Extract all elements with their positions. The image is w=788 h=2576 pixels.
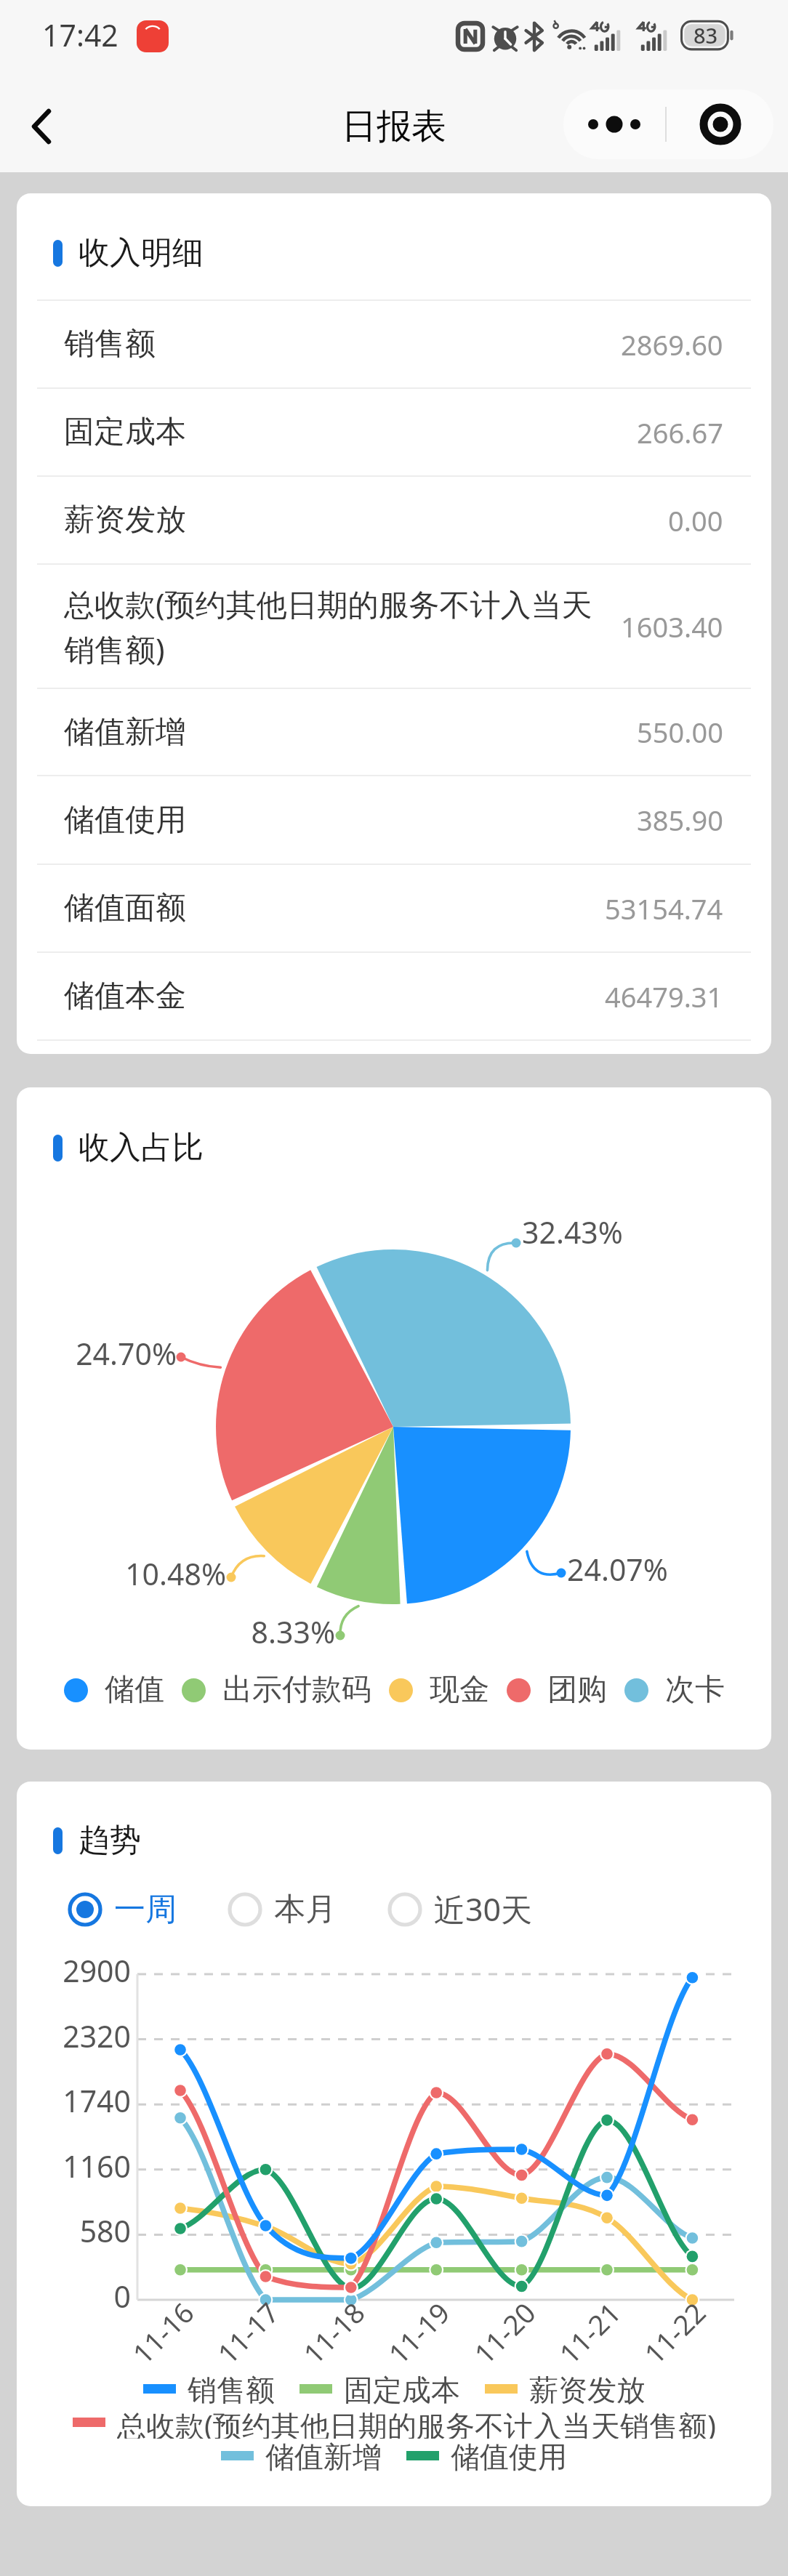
- staticText: 11-17: [209, 2293, 287, 2372]
- staticText: 储值新增: [265, 2439, 382, 2472]
- staticText: 11-19: [380, 2293, 458, 2372]
- button[interactable]: 总收款(预约其他日期的服务不计入当天销售额): [17, 565, 771, 688]
- button[interactable]: 一周: [66, 1890, 177, 1929]
- staticText: 580: [17, 2210, 131, 2251]
- staticText: 17:42: [42, 15, 118, 55]
- staticText: 10.48%: [17, 1553, 226, 1594]
- staticText: 24.07%: [567, 1549, 771, 1590]
- staticText: 收入占比: [79, 1128, 204, 1167]
- staticText: 收入明细: [79, 233, 204, 273]
- button[interactable]: Close mini program: [667, 89, 773, 159]
- button[interactable]: 固定成本: [17, 389, 771, 475]
- staticText: 销售额: [188, 2372, 275, 2405]
- button[interactable]: 固定成本: [299, 2372, 460, 2405]
- button[interactable]: 储值使用: [406, 2439, 567, 2472]
- button[interactable]: 近30天: [386, 1888, 533, 1931]
- staticText: 2900: [17, 1950, 131, 1991]
- staticText: 近30天: [434, 1888, 533, 1931]
- staticText: 固定成本: [344, 2372, 460, 2405]
- staticText: 趋势: [79, 1821, 141, 1860]
- staticText: 储值本金: [64, 977, 186, 1015]
- staticText: 11-16: [124, 2293, 202, 2372]
- button[interactable]: 总收款(预约其他日期的服务不计入当天销售额): [73, 2405, 716, 2439]
- staticText: 2869.60: [621, 326, 723, 363]
- staticText: 53154.74: [605, 890, 723, 927]
- staticText: 24.70%: [17, 1333, 177, 1374]
- staticText: 本月: [274, 1890, 337, 1929]
- button[interactable]: Back: [9, 94, 74, 159]
- staticText: 11-20: [465, 2293, 544, 2372]
- staticText: 83: [693, 21, 718, 49]
- staticText: 550.00: [637, 713, 723, 751]
- staticText: 次卡: [665, 1671, 725, 1709]
- button[interactable]: 储值新增: [221, 2439, 382, 2472]
- staticText: 一周: [114, 1890, 177, 1929]
- button[interactable]: 薪资发放: [485, 2372, 646, 2405]
- button[interactable]: 本月: [226, 1890, 337, 1929]
- button[interactable]: 储值新增: [17, 689, 771, 775]
- staticText: 总收款(预约其他日期的服务不计入当天销售额): [117, 2405, 716, 2439]
- staticText: 1740: [17, 2080, 131, 2121]
- staticText: 储值新增: [64, 713, 186, 752]
- staticText: 出示付款码: [222, 1671, 371, 1709]
- staticText: 储值使用: [451, 2439, 567, 2472]
- button[interactable]: 储值使用: [17, 776, 771, 864]
- staticText: 11-22: [636, 2293, 714, 2372]
- staticText: 薪资发放: [64, 501, 186, 539]
- button[interactable]: 销售额: [17, 301, 771, 387]
- button[interactable]: 储值面额: [17, 865, 771, 951]
- staticText: 总收款(预约其他日期的服务不计入当天销售额): [64, 583, 612, 670]
- staticText: 固定成本: [64, 413, 186, 451]
- staticText: 1160: [17, 2146, 131, 2186]
- staticText: 日报表: [342, 105, 446, 148]
- button[interactable]: 储值本金: [17, 953, 771, 1039]
- staticText: 薪资发放: [529, 2372, 646, 2405]
- staticText: 销售额: [64, 325, 156, 363]
- staticText: 储值面额: [64, 889, 186, 927]
- staticText: 1603.40: [621, 608, 723, 645]
- button[interactable]: 薪资发放: [17, 477, 771, 563]
- staticText: 32.43%: [522, 1212, 740, 1252]
- staticText: 2320: [17, 2016, 131, 2056]
- staticText: 现金: [430, 1671, 489, 1709]
- staticText: 0.00: [668, 502, 723, 539]
- staticText: 团购: [547, 1671, 607, 1709]
- staticText: 385.90: [637, 801, 723, 839]
- staticText: 8.33%: [117, 1611, 335, 1652]
- staticText: 266.67: [637, 414, 723, 451]
- staticText: 11-21: [551, 2293, 629, 2372]
- staticText: 11-18: [295, 2293, 373, 2372]
- staticText: 储值使用: [64, 801, 186, 840]
- button[interactable]: More options: [563, 89, 665, 159]
- staticText: 46479.31: [605, 978, 723, 1015]
- button[interactable]: 销售额: [143, 2372, 275, 2405]
- staticText: 储值: [105, 1671, 164, 1709]
- staticText: 0: [17, 2276, 131, 2317]
